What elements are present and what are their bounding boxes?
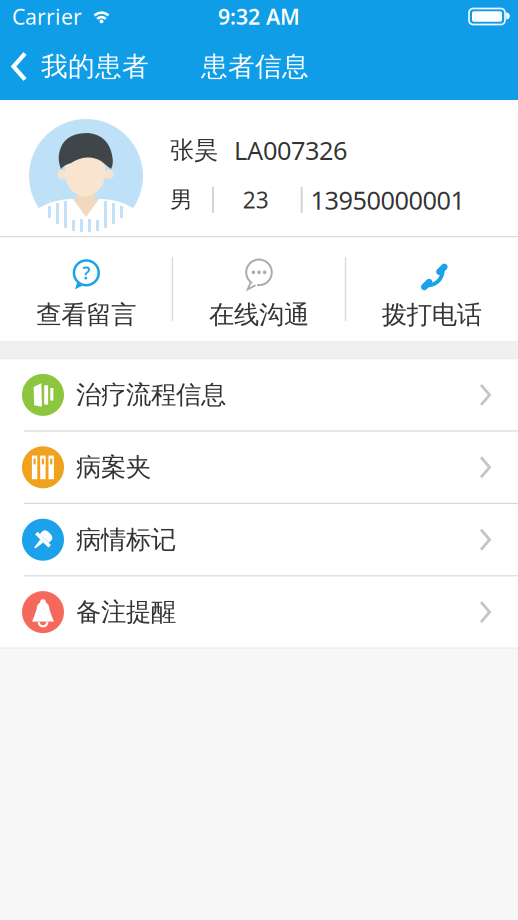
staticText: 治疗流程信息	[76, 379, 226, 410]
button[interactable]: 病案夹	[0, 432, 518, 503]
staticText: 拨打电话	[382, 299, 482, 330]
staticText: 13950000001	[311, 183, 465, 217]
staticText: 备注提醒	[76, 596, 176, 628]
staticText: ?	[82, 261, 90, 284]
staticText: 患者信息	[201, 50, 309, 83]
staticText: Carrier	[12, 2, 82, 31]
button[interactable]: 备注提醒	[0, 577, 518, 648]
staticText: 9:32 AM	[218, 2, 300, 31]
staticText: 男	[170, 186, 193, 214]
button[interactable]: 在线沟通	[173, 248, 345, 330]
staticText: 查看留言	[36, 299, 136, 330]
staticText: 病案夹	[76, 452, 151, 483]
button[interactable]: 治疗流程信息	[0, 359, 518, 430]
button[interactable]: 病情标记	[0, 504, 518, 575]
staticText: LA007326	[234, 133, 347, 167]
staticText: 在线沟通	[209, 299, 309, 330]
button[interactable]: 拨打电话	[345, 248, 518, 330]
staticText: 我的患者	[41, 50, 149, 83]
staticText: 23	[243, 185, 269, 215]
staticText: 病情标记	[76, 524, 176, 555]
button[interactable]: 返回我的患者	[0, 50, 149, 83]
button[interactable]: ?	[0, 248, 173, 330]
staticText: 张昊	[170, 135, 218, 165]
